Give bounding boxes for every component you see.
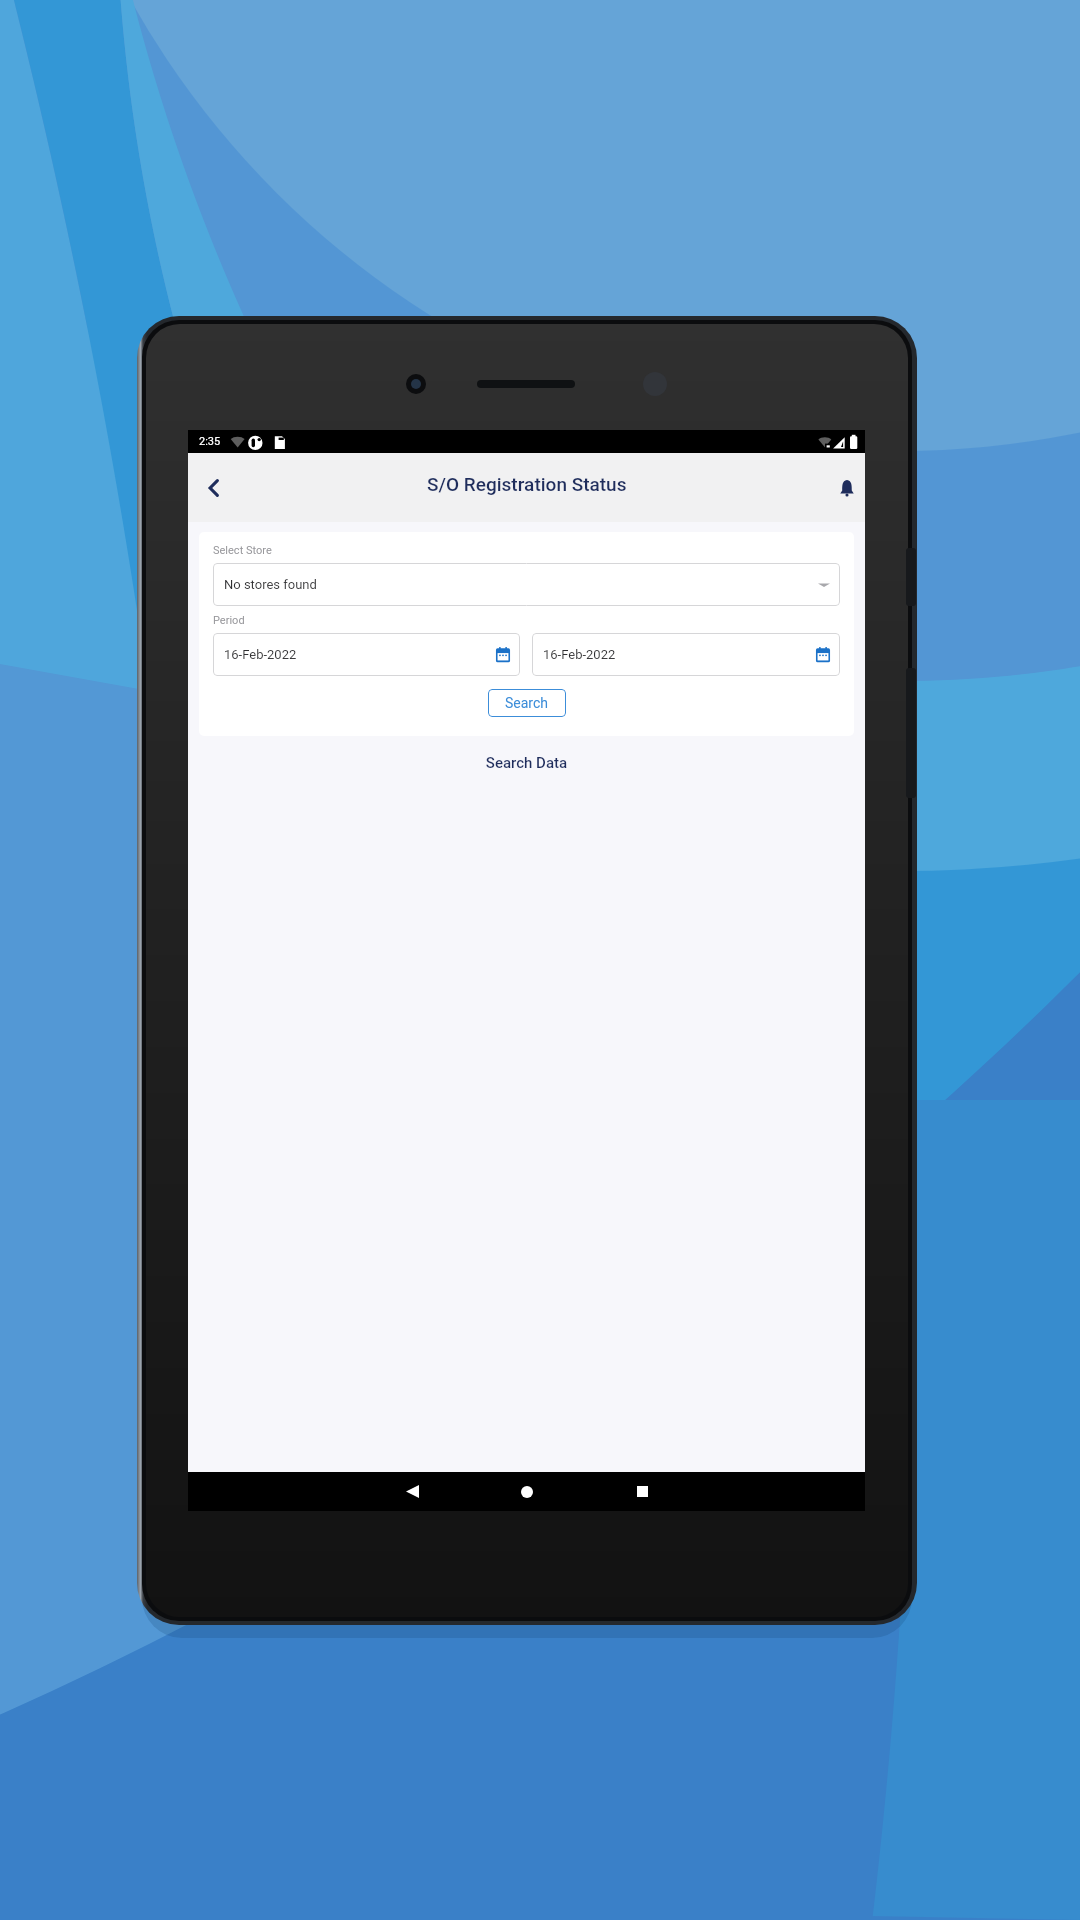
button[interactable]: Back [382, 1472, 442, 1511]
button[interactable]: No stores found [213, 563, 840, 606]
button[interactable]: 16-Feb-2022 [532, 633, 840, 676]
staticText: S/O Registration Status [427, 473, 627, 495]
button[interactable]: Back [190, 464, 238, 512]
staticText: Search Data [188, 754, 865, 772]
staticText: 16-Feb-2022 [224, 647, 297, 662]
button[interactable]: Home [497, 1472, 557, 1511]
staticText: No stores found [224, 577, 317, 592]
staticText: Search [505, 695, 549, 711]
staticText: Period [213, 614, 245, 627]
staticText: Select Store [213, 544, 272, 557]
button[interactable]: Search [488, 689, 566, 717]
button[interactable]: Notifications [823, 464, 871, 512]
staticText: 16-Feb-2022 [543, 647, 616, 662]
button[interactable]: Recents [612, 1472, 672, 1511]
staticText: 2:35 [199, 435, 221, 448]
button[interactable]: 16-Feb-2022 [213, 633, 520, 676]
